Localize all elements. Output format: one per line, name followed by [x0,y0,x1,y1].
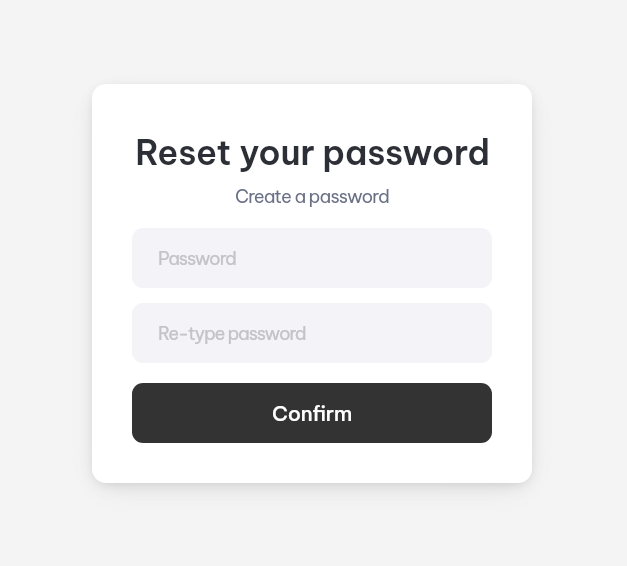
button[interactable]: Password [132,228,492,288]
staticText: Re-type password [158,322,306,345]
staticText: Create a password [235,185,389,208]
staticText: Password [158,247,236,270]
staticText: Reset your password [135,130,490,174]
button[interactable]: Con‌firm [132,383,492,443]
staticText: Con‌firm [272,400,353,426]
button[interactable]: Re-type password [132,303,492,363]
